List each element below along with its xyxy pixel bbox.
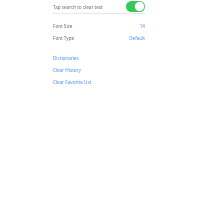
button[interactable]: Clear Favorite List — [53, 78, 145, 86]
staticText: 14 — [139, 23, 145, 29]
staticText: Tap search to clear text — [53, 4, 103, 10]
button[interactable]: Tap search to clear text toggle — [126, 1, 145, 12]
staticText: Clear History — [53, 67, 81, 73]
button[interactable]: Font Size — [53, 22, 145, 30]
button[interactable]: Font Type — [53, 34, 145, 42]
staticText: Clear Favorite List — [53, 79, 92, 85]
button[interactable]: Tap search to clear text — [53, 0, 145, 13]
staticText: Default — [129, 35, 145, 41]
button[interactable]: Dictionaries — [53, 54, 145, 62]
staticText: Font Size — [53, 23, 73, 29]
staticText: Dictionaries — [53, 55, 79, 61]
staticText: Font Type — [53, 35, 75, 41]
button[interactable]: Clear History — [53, 66, 145, 74]
